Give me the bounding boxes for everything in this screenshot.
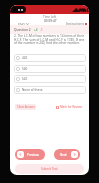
staticText: Mark for Review: [60, 105, 82, 109]
staticText: Instructions: [66, 22, 84, 26]
button[interactable]: Clear Answer: [15, 104, 36, 110]
staticText: ENG: [18, 22, 25, 27]
staticText: Clear Answer: [17, 105, 35, 109]
staticText: Previous: [27, 153, 40, 157]
button[interactable]: Submit Test: [15, 164, 84, 174]
staticText: Submit Test: [41, 167, 58, 171]
staticText: Question 2: [14, 28, 31, 32]
button[interactable]: 540: [14, 65, 86, 73]
staticText: None of these: [22, 88, 43, 92]
staticText: 540: [22, 67, 28, 71]
button[interactable]: ENG: [17, 20, 30, 28]
button[interactable]: 620: [14, 75, 86, 83]
button[interactable]: Mark for Review: [56, 104, 82, 110]
button[interactable]: Previous: [15, 149, 45, 160]
staticText: 420: [22, 56, 28, 60]
staticText: 620: [22, 77, 28, 81]
staticText: +4: [34, 28, 38, 32]
staticText: -1: [40, 28, 43, 32]
button[interactable]: 420: [14, 54, 86, 62]
button[interactable]: None of these: [14, 86, 86, 94]
staticText: 2. The L.C.M of two numbers is 14 times …: [14, 34, 86, 45]
button[interactable]: Next: [54, 149, 80, 160]
button[interactable]: Instructions: [65, 20, 88, 28]
staticText: Time Left: [43, 15, 57, 19]
staticText: Next: [60, 153, 67, 157]
staticText: 00:59:47: [44, 19, 57, 23]
